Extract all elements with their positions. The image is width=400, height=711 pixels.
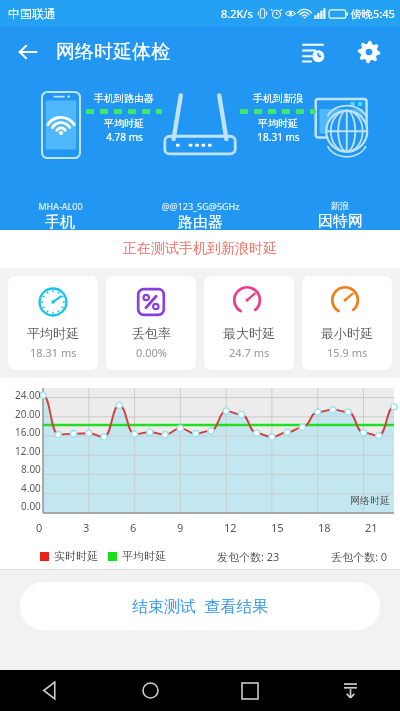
staticText: 手机到路由器 — [94, 92, 154, 105]
staticText: 丢包个数: 0 — [331, 549, 388, 564]
staticText: 平均时延 — [27, 325, 79, 341]
staticText: 4.78 ms — [106, 130, 143, 144]
staticText: 3 — [83, 520, 90, 535]
staticText: 丢包率 — [132, 325, 171, 341]
staticText: 18 — [318, 520, 331, 535]
staticText: 因特网 — [318, 212, 363, 231]
button[interactable]: Recents — [200, 670, 300, 711]
staticText: 12 — [224, 520, 237, 535]
staticText: 最小时延 — [321, 325, 373, 341]
button[interactable]: 最大时延 — [204, 276, 294, 370]
staticText: 路由器 — [178, 213, 223, 232]
staticText: 手机到新浪 — [253, 92, 303, 105]
button[interactable]: Settings — [348, 31, 390, 73]
staticText: 24.00 — [15, 388, 41, 402]
staticText: 结束测试 查看结果 — [132, 595, 269, 617]
button[interactable]: 平均时延 — [8, 276, 98, 370]
staticText: 平均时延 — [258, 117, 298, 130]
staticText: 平均时延 — [122, 549, 166, 563]
button[interactable]: 结束测试 查看结果 — [20, 582, 380, 630]
staticText: 9 — [177, 520, 184, 535]
staticText: 中国联通 — [8, 6, 56, 21]
staticText: 16.00 — [15, 425, 41, 439]
button[interactable]: Hide navigation bar — [300, 670, 400, 711]
staticText: 8.2K/s — [221, 6, 253, 21]
staticText: 平均时延 — [104, 117, 144, 130]
staticText: 网络时延体检 — [56, 40, 170, 64]
button[interactable]: Back — [8, 32, 48, 72]
staticText: 0.00% — [136, 345, 167, 360]
staticText: 20.00 — [15, 407, 41, 421]
staticText: 傍晚5:45 — [351, 6, 395, 21]
staticText: 新浪 — [331, 200, 349, 211]
staticText: 正在测试手机到新浪时延 — [123, 240, 277, 258]
staticText: 8.00 — [21, 462, 41, 476]
staticText: 发包个数: 23 — [217, 549, 280, 564]
button[interactable]: 最小时延 — [302, 276, 392, 370]
staticText: 0.00 — [21, 499, 41, 513]
staticText: 24.7 ms — [229, 345, 270, 360]
staticText: 实时时延 — [54, 549, 98, 563]
button[interactable]: Home — [100, 670, 200, 711]
staticText: 15 — [271, 520, 284, 535]
staticText: 0 — [36, 520, 43, 535]
staticText: 网络时延 — [350, 494, 390, 507]
staticText: 15.9 ms — [327, 345, 368, 360]
staticText: 最大时延 — [223, 325, 275, 341]
staticText: 手机 — [45, 213, 75, 232]
button[interactable]: History — [292, 31, 334, 73]
staticText: 21 — [365, 520, 378, 535]
button[interactable]: Back — [0, 670, 100, 711]
staticText: 4.00 — [21, 481, 41, 495]
staticText: @@123_5G@5GHz — [161, 200, 240, 212]
staticText: MHA-AL00 — [38, 200, 83, 212]
staticText: 18.31 ms — [30, 345, 77, 360]
staticText: 6 — [130, 520, 137, 535]
button[interactable]: 丢包率 — [106, 276, 196, 370]
staticText: 18.31 ms — [257, 130, 300, 144]
staticText: 12.00 — [15, 444, 41, 458]
